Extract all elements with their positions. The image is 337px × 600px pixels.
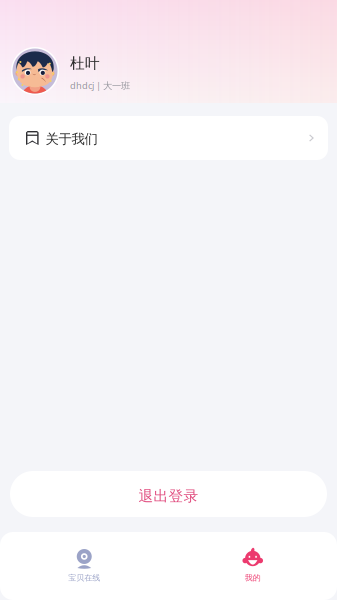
staticText: 我的 [245,573,261,583]
staticText: 退出登录 [138,487,198,505]
staticText: dhdcj | 大一班 [70,79,130,92]
staticText: 杜叶 [70,54,100,72]
button[interactable]: 我的 [168,549,337,583]
button[interactable]: 退出登录 [10,471,327,517]
staticText: 关于我们 [46,131,98,147]
button[interactable]: 关于我们 [9,116,328,160]
staticText: 宝贝在线 [68,573,100,583]
button[interactable]: 宝贝在线 [0,549,168,583]
